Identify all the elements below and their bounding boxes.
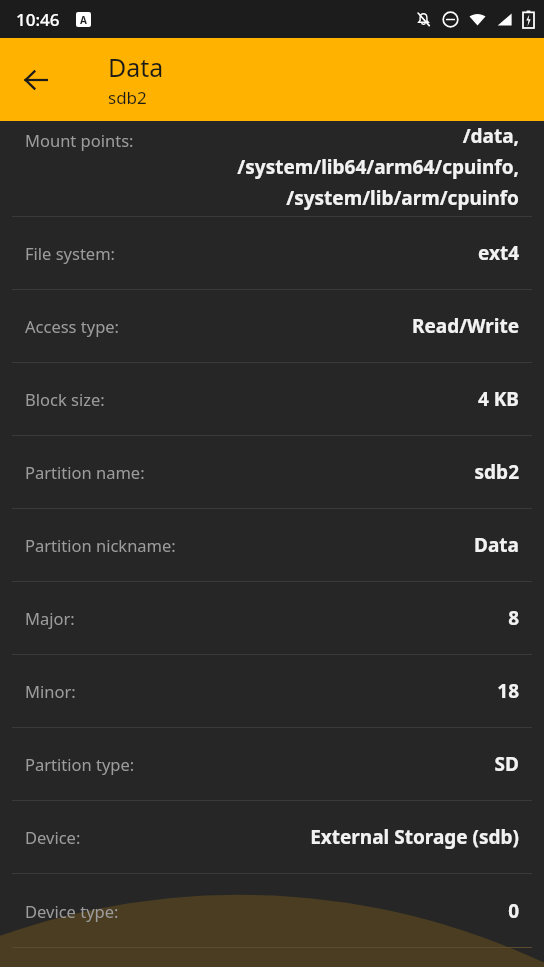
staticText: Device: [25,826,81,848]
staticText: Data [474,532,519,558]
staticText: SD [494,751,519,777]
staticText: Block size: [25,388,105,410]
staticText: sdb2 [108,86,147,109]
button[interactable]: Block size: [0,363,544,435]
button[interactable]: Partition name: [0,436,544,508]
button[interactable]: Device: [0,801,544,873]
staticText: File system: [25,242,116,264]
staticText: 18 [497,678,519,704]
button[interactable]: Access type: [0,290,544,362]
staticText: 4 KB [477,386,519,412]
staticText: Partition nickname: [25,534,176,556]
staticText: 0 [508,898,519,924]
staticText: sdb2 [474,459,519,485]
staticText: /data, /system/lib64/arm64/cpuinfo, /sys… [159,123,519,211]
staticText: Minor: [25,680,76,702]
staticText: 10:46 [16,8,60,31]
button[interactable]: Partition nickname: [0,509,544,581]
button[interactable]: Mount points: [0,121,544,216]
staticText: Partition type: [25,753,135,775]
staticText: Read/Write [411,313,519,339]
staticText: Access type: [25,315,120,337]
button[interactable]: Partition type: [0,728,544,800]
button[interactable]: Major: [0,582,544,654]
button[interactable]: Minor: [0,655,544,727]
staticText: 8 [508,605,519,631]
staticText: Partition name: [25,461,145,483]
button[interactable]: File system: [0,217,544,289]
staticText: Data [108,50,164,84]
staticText: Mount points: [25,129,134,151]
staticText: Device type: [25,900,119,922]
staticText: Major: [25,607,75,629]
staticText: A [80,13,87,27]
staticText: External Storage (sdb) [310,824,519,850]
button[interactable]: Back [8,52,64,108]
button[interactable]: Device type: [0,874,544,948]
staticText: ext4 [477,240,519,266]
